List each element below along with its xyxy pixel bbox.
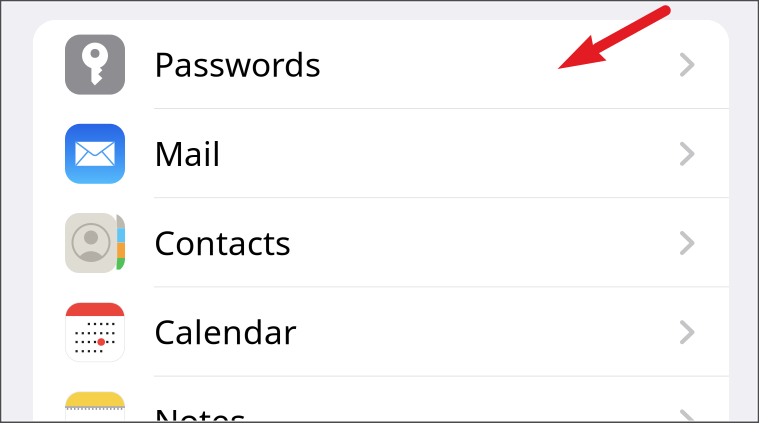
button[interactable]: Mail (33, 109, 729, 198)
staticText: Mail (154, 131, 221, 175)
button[interactable]: Passwords (33, 20, 729, 109)
staticText: Passwords (154, 42, 321, 86)
button[interactable]: Calendar (33, 288, 729, 377)
staticText: Contacts (154, 220, 291, 264)
staticText: Calendar (154, 309, 297, 354)
button[interactable]: Notes (33, 377, 729, 423)
staticText: Notes (154, 398, 246, 423)
button[interactable]: Contacts (33, 198, 729, 288)
